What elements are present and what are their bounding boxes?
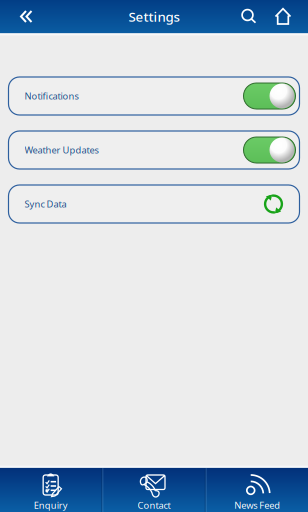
staticText: News Feed [234,499,280,511]
button[interactable]: Sync Data [8,185,299,223]
staticText: Contact [137,499,170,511]
staticText: Settings [128,8,179,25]
staticText: Sync Data [24,198,66,210]
button[interactable]: News Feed [207,468,308,512]
button[interactable]: Weather Updates [8,131,299,169]
button[interactable]: Notifications [8,77,299,115]
staticText: Notifications [24,90,78,102]
button[interactable]: Search [232,0,266,33]
button[interactable]: Home [266,0,300,33]
button[interactable]: Contact [103,468,205,512]
staticText: Enquiry [34,499,68,511]
button[interactable]: Enquiry [0,468,101,512]
staticText: Weather Updates [24,144,98,156]
button[interactable]: Back [8,0,44,33]
